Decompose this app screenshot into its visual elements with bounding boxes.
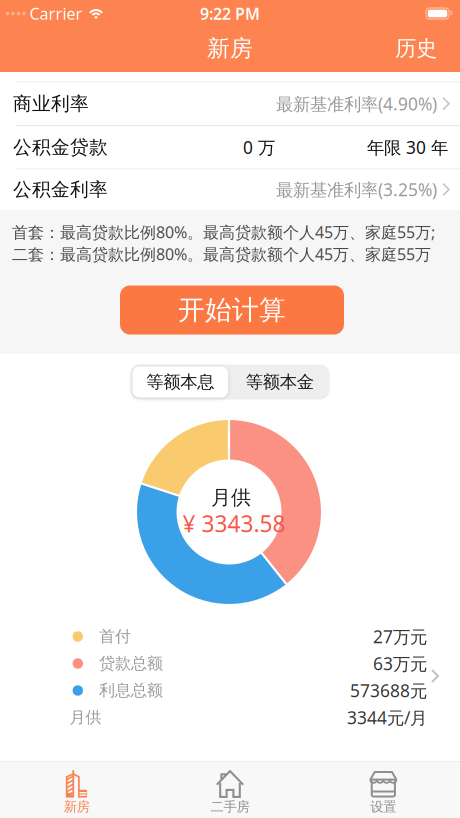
staticText: 商业利率 <box>13 92 89 115</box>
button[interactable]: 二手房 <box>153 762 307 818</box>
staticText: 年限 30 年 <box>367 136 448 159</box>
staticText: 63万元 <box>373 652 427 675</box>
staticText: 573688元 <box>350 679 427 702</box>
staticText: Carrier <box>29 3 82 24</box>
staticText: 公积金贷款 <box>13 136 108 159</box>
staticText: 月供 <box>69 708 101 727</box>
staticText: 首套：最高贷款比例80%。最高贷款额个人45万、家庭55万; <box>12 221 435 243</box>
button[interactable]: 历史 <box>395 35 460 62</box>
staticText: 最新基准利率(4.90%) <box>276 92 437 115</box>
staticText: 0 万 <box>243 136 275 159</box>
staticText: 开始计算 <box>178 294 286 326</box>
button[interactable]: 等额本息 <box>130 364 230 399</box>
staticText: 二套：最高贷款比例80%。最高贷款额个人45万、家庭55万 <box>12 243 431 265</box>
staticText: 等额本金 <box>246 371 314 393</box>
staticText: ¥ 3343.58 <box>182 508 285 538</box>
staticText: 贷款总额 <box>99 654 163 673</box>
button[interactable]: 新房 <box>0 762 153 818</box>
staticText: 等额本息 <box>146 371 214 393</box>
staticText: 设置 <box>370 798 396 815</box>
button[interactable]: 等额本金 <box>230 364 329 399</box>
button[interactable]: 公积金利率 <box>0 169 460 209</box>
staticText: 9:22 PM <box>200 3 260 24</box>
button[interactable]: 商业利率 <box>0 82 460 125</box>
button[interactable]: 公积金贷款 <box>0 126 460 168</box>
staticText: 27万元 <box>373 625 427 648</box>
staticText: 公积金利率 <box>13 178 108 201</box>
staticText: 月供 <box>211 485 251 510</box>
button[interactable]: 设置 <box>307 762 460 818</box>
staticText: 二手房 <box>210 798 249 815</box>
staticText: 首付 <box>99 627 131 646</box>
staticText: 新房 <box>207 35 253 62</box>
staticText: 历史 <box>395 35 437 62</box>
staticText: 3344元/月 <box>347 706 427 729</box>
staticText: 最新基准利率(3.25%) <box>276 178 437 201</box>
staticText: 利息总额 <box>99 681 163 700</box>
staticText: 新房 <box>64 798 90 815</box>
button[interactable]: 利息总额 <box>0 677 460 704</box>
button[interactable]: 开始计算 <box>120 285 344 334</box>
